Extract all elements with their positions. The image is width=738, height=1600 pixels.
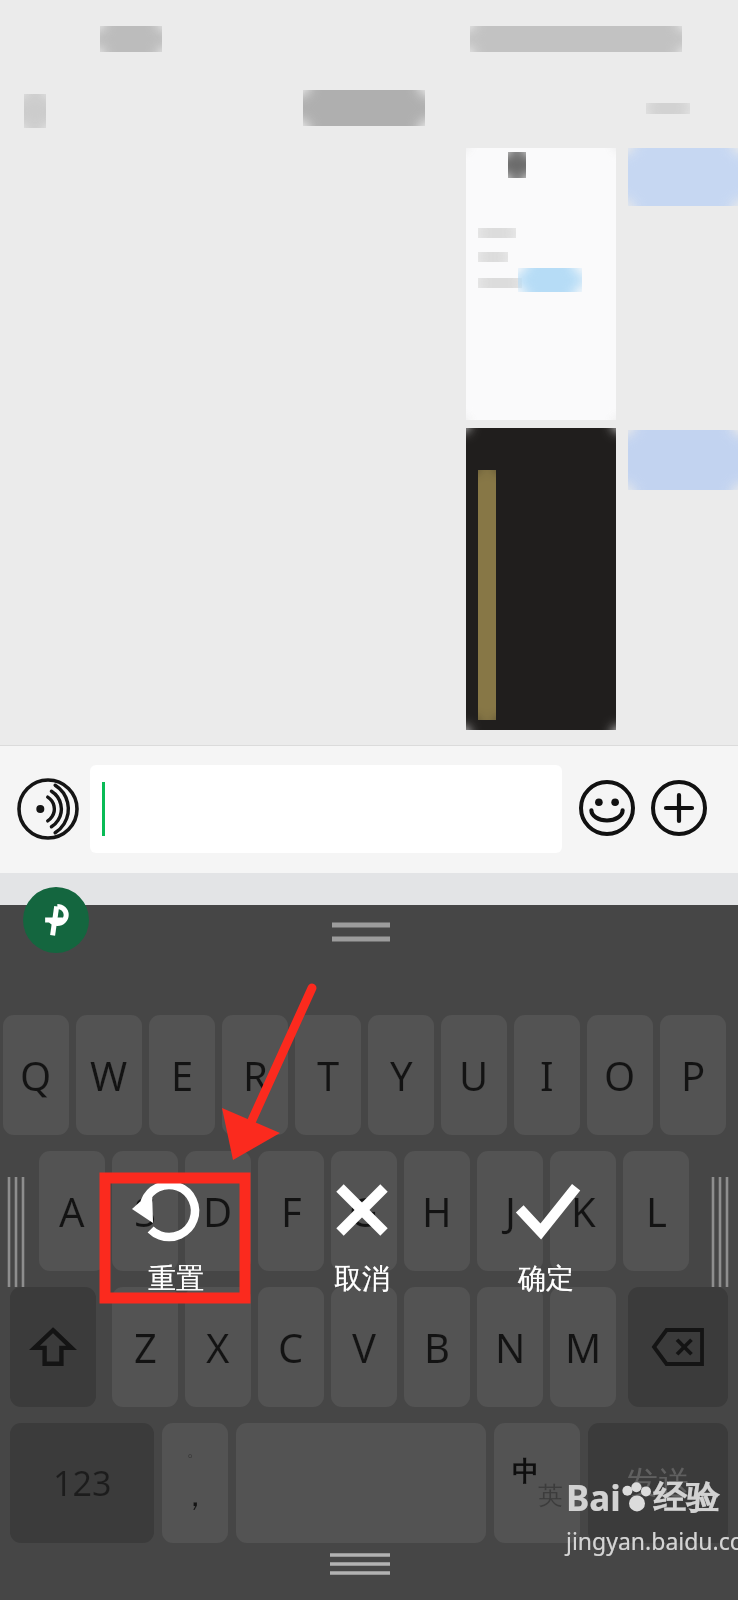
button[interactable]: 123 <box>10 1423 154 1543</box>
button[interactable]: J <box>477 1151 543 1271</box>
button[interactable]: F <box>258 1151 324 1271</box>
staticText: H <box>422 1184 452 1238</box>
staticText: 中 <box>512 1455 539 1489</box>
button[interactable]: Shift <box>10 1287 96 1407</box>
staticText: J <box>505 1184 516 1238</box>
button[interactable]: K <box>550 1151 616 1271</box>
button[interactable]: Voice input <box>16 777 80 841</box>
staticText: G <box>349 1184 379 1238</box>
button[interactable]: 确定 Confirm <box>492 1180 600 1296</box>
button[interactable]: X <box>185 1287 251 1407</box>
staticText: N <box>495 1320 526 1374</box>
button[interactable]: E <box>149 1015 215 1135</box>
button[interactable]: V <box>331 1287 397 1407</box>
staticText: M <box>565 1320 602 1374</box>
button[interactable]: A <box>39 1151 105 1271</box>
staticText: jingyan.baidu.com <box>566 1525 738 1556</box>
staticText: W <box>90 1048 128 1102</box>
button[interactable]: M <box>550 1287 616 1407</box>
staticText: P <box>681 1048 706 1102</box>
button[interactable]: Z <box>112 1287 178 1407</box>
staticText: T <box>317 1048 340 1102</box>
button[interactable]: 取消 Cancel <box>308 1180 416 1296</box>
button[interactable]: Switch Chinese English <box>494 1423 580 1543</box>
staticText: L <box>646 1184 667 1238</box>
button[interactable]: D <box>185 1151 251 1271</box>
button[interactable]: C <box>258 1287 324 1407</box>
button[interactable]: W <box>76 1015 142 1135</box>
staticText: C <box>278 1320 304 1374</box>
staticText: E <box>171 1048 194 1102</box>
staticText: Z <box>134 1320 157 1374</box>
staticText: Q <box>20 1048 52 1102</box>
staticText: 发送 <box>625 1462 691 1504</box>
button[interactable] <box>90 765 562 853</box>
button[interactable]: G <box>331 1151 397 1271</box>
staticText: K <box>571 1184 596 1238</box>
button[interactable]: R <box>222 1015 288 1135</box>
staticText: 重置 <box>148 1261 204 1296</box>
button[interactable]: H <box>404 1151 470 1271</box>
staticText: V <box>352 1320 376 1374</box>
button[interactable]: Emoji <box>578 779 636 837</box>
staticText: I <box>540 1048 554 1102</box>
button[interactable]: N <box>477 1287 543 1407</box>
button[interactable]: S <box>112 1151 178 1271</box>
staticText: 确定 <box>518 1261 574 1296</box>
button[interactable]: P <box>660 1015 726 1135</box>
button[interactable]: Keyboard menu <box>23 887 89 953</box>
button[interactable]: 重置 Reset <box>122 1180 230 1296</box>
button[interactable]: L <box>623 1151 689 1271</box>
staticText: O <box>604 1048 636 1102</box>
button[interactable]: T <box>295 1015 361 1135</box>
staticText: 123 <box>53 1460 112 1506</box>
staticText: Bai <box>566 1474 621 1522</box>
staticText: B <box>424 1320 450 1374</box>
button[interactable]: Q <box>3 1015 69 1135</box>
button[interactable]: 发送 <box>588 1423 728 1543</box>
staticText: 英 <box>538 1480 563 1511</box>
staticText: A <box>59 1184 85 1238</box>
button[interactable]: More actions <box>650 779 708 837</box>
button[interactable]: O <box>587 1015 653 1135</box>
staticText: Y <box>390 1048 413 1102</box>
staticText: 经验 <box>653 1477 719 1519</box>
staticText: R <box>243 1048 268 1102</box>
button[interactable]: U <box>441 1015 507 1135</box>
staticText: 取消 <box>334 1261 390 1296</box>
staticText: D <box>203 1184 233 1238</box>
staticText: U <box>459 1048 489 1102</box>
button[interactable]: I <box>514 1015 580 1135</box>
staticText: ， <box>179 1475 211 1515</box>
staticText: X <box>206 1320 230 1374</box>
staticText: S <box>134 1184 156 1238</box>
staticText: F <box>281 1184 302 1238</box>
button[interactable]: Y <box>368 1015 434 1135</box>
button[interactable]: B <box>404 1287 470 1407</box>
button[interactable]: Backspace <box>628 1287 728 1407</box>
